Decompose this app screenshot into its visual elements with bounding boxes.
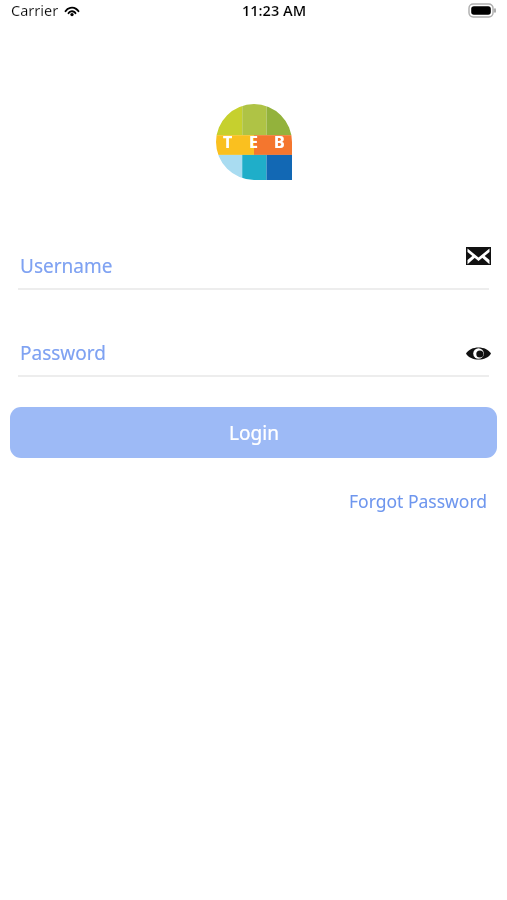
button[interactable]: Show password: [461, 342, 496, 365]
button[interactable]: Email: [461, 244, 496, 268]
button[interactable]: Forgot Password: [335, 483, 507, 519]
button[interactable]: Username: [0, 244, 507, 288]
staticText: B: [274, 131, 285, 153]
staticText: E: [249, 131, 258, 153]
staticText: Password: [20, 340, 106, 366]
button[interactable]: Password: [0, 331, 507, 375]
staticText: Login: [229, 420, 279, 446]
staticText: T: [223, 131, 233, 153]
button[interactable]: Login: [10, 407, 497, 458]
staticText: Username: [20, 253, 113, 279]
staticText: Forgot Password: [349, 489, 488, 513]
staticText: Carrier: [11, 0, 59, 20]
staticText: 11:23 AM: [242, 0, 307, 20]
